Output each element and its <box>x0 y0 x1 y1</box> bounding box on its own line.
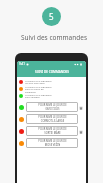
button[interactable]: SUIVI DE COMMANDES <box>17 67 86 77</box>
staticText: POUR MME LE JOUR DE CORMOT-LE-LARGE <box>38 115 67 123</box>
staticText: La photo et la signature sont en cours d… <box>25 85 53 93</box>
button[interactable]: Supprimer <box>78 129 83 134</box>
button[interactable]: POUR MME LE JOUR DE CORMOT-LE-LARGE <box>19 113 84 125</box>
button[interactable]: 5 <box>42 7 61 26</box>
staticText: POUR MME LE JOUR DE 08/07/2025 <box>38 103 67 111</box>
button[interactable]: La photo et la signature sont en cours d… <box>19 85 84 93</box>
staticText: POUR MME LE JOUR DE SORTIE MARE <box>38 127 67 135</box>
button[interactable]: POUR MME LE JOUR DE SORTIE MARE <box>19 125 84 137</box>
staticText: La photo et la signature ne sont pas fai… <box>25 79 53 85</box>
staticText: Suivi des commandes <box>21 33 88 42</box>
staticText: POUR MME LE JOUR DE MOSE VEZIN <box>38 139 67 147</box>
button[interactable]: La photo et la signature sont validées <box>19 93 84 99</box>
staticText: SUIVI DE COMMANDES <box>35 70 69 74</box>
button[interactable]: Supprimer <box>78 105 83 110</box>
button[interactable]: La photo et la signature ne sont pas fai… <box>19 78 84 85</box>
button[interactable]: POUR MME LE JOUR DE 08/07/2025 <box>19 101 84 113</box>
staticText: 5 <box>49 11 54 22</box>
staticText: La photo et la signature sont validées <box>25 93 53 99</box>
button[interactable]: POUR MME LE JOUR DE MOSE VEZIN <box>19 137 84 149</box>
staticText: 9:41 <box>19 62 25 66</box>
